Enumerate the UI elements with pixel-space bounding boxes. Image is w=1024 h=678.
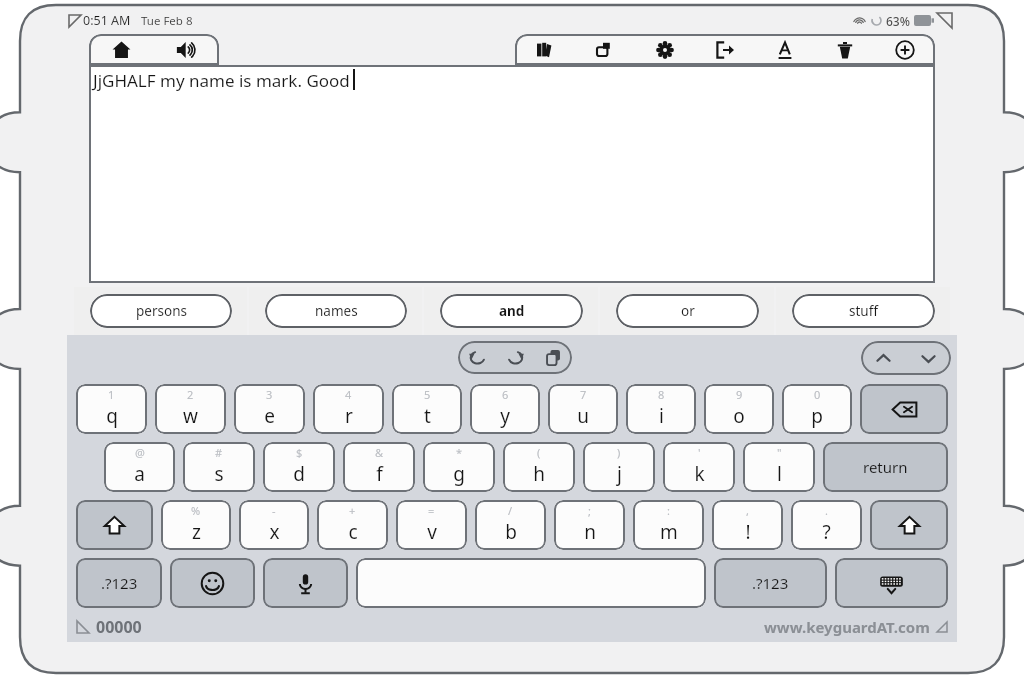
- button[interactable]: Paste: [534, 341, 572, 374]
- button[interactable]: .: [791, 500, 862, 550]
- button[interactable]: 0: [782, 384, 852, 434]
- staticText: .?123: [101, 573, 138, 593]
- staticText: s: [214, 461, 224, 487]
- button[interactable]: names: [265, 294, 407, 328]
- button[interactable]: =: [396, 500, 467, 550]
- staticText: and: [499, 302, 525, 320]
- button[interactable]: /: [475, 500, 546, 550]
- button[interactable]: #: [183, 442, 255, 492]
- button[interactable]: Undo: [458, 341, 496, 374]
- staticText: $: [296, 445, 303, 460]
- staticText: t: [424, 403, 431, 429]
- button[interactable]: or: [616, 294, 759, 328]
- staticText: 0:51 AM: [83, 12, 131, 29]
- button[interactable]: 8: [626, 384, 696, 434]
- button[interactable]: shift: [76, 500, 153, 550]
- staticText: o: [733, 403, 745, 429]
- staticText: l: [777, 461, 782, 487]
- staticText: ): [617, 445, 621, 460]
- button[interactable]: ;: [554, 500, 625, 550]
- button[interactable]: stuff: [792, 294, 935, 328]
- button[interactable]: 2: [155, 384, 226, 434]
- staticText: 00000: [96, 616, 142, 638]
- button[interactable]: emoji: [170, 558, 255, 608]
- button[interactable]: Add: [875, 34, 935, 65]
- staticText: return: [863, 457, 908, 477]
- button[interactable]: *: [423, 442, 495, 492]
- button[interactable]: 9: [704, 384, 774, 434]
- button[interactable]: 6: [470, 384, 540, 434]
- staticText: v: [427, 519, 437, 545]
- button[interactable]: Export: [695, 34, 755, 65]
- button[interactable]: Copy: [575, 34, 635, 65]
- staticText: #: [215, 445, 223, 460]
- button[interactable]: [356, 558, 706, 608]
- button[interactable]: ,: [712, 500, 783, 550]
- button[interactable]: ): [583, 442, 655, 492]
- button[interactable]: $: [263, 442, 335, 492]
- staticText: JjGHALF my name is mark. Good: [93, 69, 350, 92]
- button[interactable]: (: [503, 442, 575, 492]
- button[interactable]: Next: [906, 341, 951, 375]
- staticText: k: [694, 461, 705, 487]
- button[interactable]: Speak: [154, 34, 219, 65]
- staticText: i: [659, 403, 664, 429]
- button[interactable]: ': [663, 442, 735, 492]
- staticText: names: [315, 302, 358, 320]
- staticText: .: [825, 503, 828, 518]
- staticText: g: [453, 461, 465, 487]
- staticText: .?123: [752, 573, 789, 593]
- button[interactable]: :: [633, 500, 704, 550]
- button[interactable]: .?123: [714, 558, 827, 608]
- staticText: /: [508, 503, 513, 518]
- button[interactable]: +: [317, 500, 388, 550]
- staticText: persons: [136, 302, 187, 320]
- staticText: ': [698, 445, 701, 460]
- button[interactable]: Previous: [861, 341, 906, 375]
- button[interactable]: .?123: [76, 558, 162, 608]
- button[interactable]: shift: [870, 500, 948, 550]
- button[interactable]: return: [823, 442, 948, 492]
- staticText: (: [537, 445, 541, 460]
- staticText: +: [349, 503, 356, 518]
- button[interactable]: 1: [76, 384, 147, 434]
- button[interactable]: -: [239, 500, 309, 550]
- staticText: h: [533, 461, 545, 487]
- button[interactable]: mic: [263, 558, 348, 608]
- button[interactable]: ": [743, 442, 815, 492]
- staticText: *: [456, 445, 463, 460]
- staticText: u: [577, 403, 589, 429]
- button[interactable]: Library: [515, 34, 575, 65]
- button[interactable]: Home: [89, 34, 154, 65]
- staticText: ;: [588, 503, 591, 518]
- button[interactable]: %: [161, 500, 231, 550]
- staticText: j: [617, 461, 622, 487]
- staticText: 1: [108, 387, 115, 402]
- button[interactable]: 3: [234, 384, 305, 434]
- staticText: 5: [424, 387, 431, 402]
- button[interactable]: Font: [755, 34, 815, 65]
- button[interactable]: &: [343, 442, 415, 492]
- button[interactable]: kbd: [835, 558, 948, 608]
- staticText: q: [106, 403, 118, 429]
- staticText: ?: [822, 519, 831, 545]
- button[interactable]: 4: [313, 384, 384, 434]
- button[interactable]: and: [440, 294, 583, 328]
- button[interactable]: Settings: [635, 34, 695, 65]
- staticText: -: [272, 503, 276, 518]
- staticText: e: [264, 403, 275, 429]
- staticText: 4: [345, 387, 352, 402]
- staticText: b: [505, 519, 517, 545]
- staticText: x: [269, 519, 280, 545]
- button[interactable]: Redo: [496, 341, 534, 374]
- staticText: f: [376, 461, 383, 487]
- staticText: 3: [266, 387, 273, 402]
- staticText: w: [183, 403, 198, 429]
- button[interactable]: 5: [392, 384, 462, 434]
- button[interactable]: persons: [90, 294, 232, 328]
- button[interactable]: 7: [548, 384, 618, 434]
- button[interactable]: @: [104, 442, 175, 492]
- button[interactable]: bksp: [860, 384, 948, 434]
- staticText: 63%: [886, 13, 910, 29]
- button[interactable]: Delete: [815, 34, 875, 65]
